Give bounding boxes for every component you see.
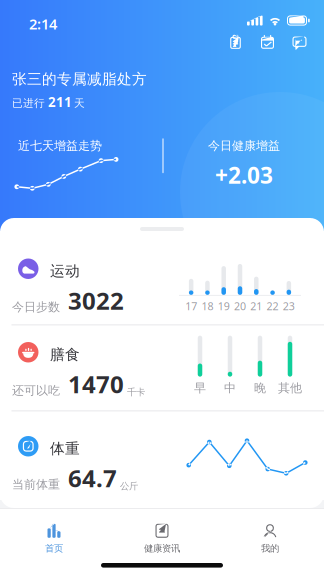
staticText: 已进行: [12, 97, 45, 110]
button[interactable]: 首页: [0, 509, 108, 563]
button[interactable]: 运动: [0, 231, 324, 324]
staticText: 20: [234, 299, 246, 313]
staticText: 中: [224, 381, 236, 395]
button[interactable]: 打卡日历: [259, 34, 276, 51]
staticText: 晚: [254, 381, 266, 395]
staticText: 64.7: [68, 462, 117, 494]
staticText: 1470: [68, 368, 124, 400]
button[interactable]: 我的: [216, 509, 324, 563]
staticText: 3022: [68, 284, 124, 316]
staticText: 今日健康增益: [208, 138, 280, 153]
staticText: 22: [267, 299, 279, 313]
staticText: 体重: [50, 439, 80, 457]
staticText: 我的: [261, 543, 279, 554]
staticText: 19: [218, 299, 230, 313]
button[interactable]: 消息: [291, 34, 308, 51]
button[interactable]: 膳食: [0, 326, 324, 410]
staticText: 膳食: [50, 345, 80, 363]
staticText: 运动: [50, 262, 80, 280]
staticText: 今日步数: [12, 300, 60, 314]
button[interactable]: 体重: [0, 412, 324, 500]
staticText: 张三的专属减脂处方: [12, 70, 147, 88]
staticText: 近七天增益走势: [18, 138, 102, 153]
staticText: 2:14: [29, 14, 57, 33]
staticText: 天: [74, 97, 85, 110]
staticText: 其他: [278, 381, 302, 395]
staticText: +2.03: [215, 160, 273, 190]
staticText: 17: [185, 299, 197, 313]
button[interactable]: 健康资讯: [108, 509, 216, 563]
staticText: 公斤: [120, 480, 138, 492]
staticText: 18: [201, 299, 213, 313]
staticText: 21: [250, 299, 262, 313]
staticText: 千卡: [127, 386, 145, 398]
staticText: 23: [283, 299, 295, 313]
staticText: 当前体重: [12, 477, 60, 492]
staticText: 首页: [45, 543, 63, 554]
staticText: 健康资讯: [144, 543, 180, 554]
button[interactable]: 健康记录: [227, 34, 244, 51]
staticText: 早: [194, 381, 206, 395]
staticText: 还可以吃: [12, 383, 60, 398]
staticText: 211: [48, 93, 72, 111]
